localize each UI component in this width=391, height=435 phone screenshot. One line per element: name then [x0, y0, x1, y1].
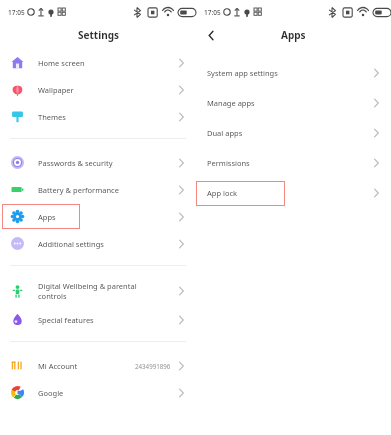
staticText: 2434991896	[135, 362, 171, 370]
staticText: Home screen	[38, 58, 85, 68]
staticText: Battery & performance	[38, 185, 119, 195]
button[interactable]: Dual apps	[196, 118, 391, 148]
staticText: Additional settings	[38, 239, 104, 249]
staticText: Themes	[38, 112, 66, 122]
button[interactable]: Mi Account	[0, 352, 196, 379]
staticText: Dual apps	[207, 128, 372, 138]
button[interactable]: Apps	[0, 203, 196, 230]
staticText: Apps	[281, 28, 306, 42]
button[interactable]: Permissions	[196, 148, 391, 178]
button[interactable]: Battery & performance	[0, 176, 196, 203]
staticText: Apps	[38, 212, 56, 222]
button[interactable]: Google	[0, 379, 196, 406]
staticText: controls	[38, 291, 67, 301]
button[interactable]: Digital Wellbeing & parental	[0, 276, 196, 306]
staticText: Settings	[78, 28, 119, 42]
staticText: 17:05	[8, 8, 25, 17]
button[interactable]: Additional settings	[0, 230, 196, 257]
staticText: Special features	[38, 315, 94, 325]
button[interactable]: Passwords & security	[0, 149, 196, 176]
staticText: Digital Wellbeing & parental	[38, 281, 137, 291]
staticText: Google	[38, 388, 64, 398]
button[interactable]: Special features	[0, 306, 196, 333]
button[interactable]: Wallpaper	[0, 76, 196, 103]
button[interactable]: Themes	[0, 103, 196, 130]
staticText: Wallpaper	[38, 85, 74, 95]
staticText: System app settings	[207, 68, 372, 78]
staticText: Permissions	[207, 158, 372, 168]
staticText: Mi Account	[38, 361, 78, 371]
button[interactable]: System app settings	[196, 58, 391, 88]
staticText: App lock	[207, 188, 372, 198]
staticText: Passwords & security	[38, 158, 113, 168]
staticText: Manage apps	[207, 98, 372, 108]
button[interactable]: Home screen	[0, 49, 196, 76]
button[interactable]: Back	[201, 26, 219, 44]
button[interactable]: App lock	[196, 178, 391, 208]
staticText: 17:05	[204, 8, 221, 17]
button[interactable]: Manage apps	[196, 88, 391, 118]
